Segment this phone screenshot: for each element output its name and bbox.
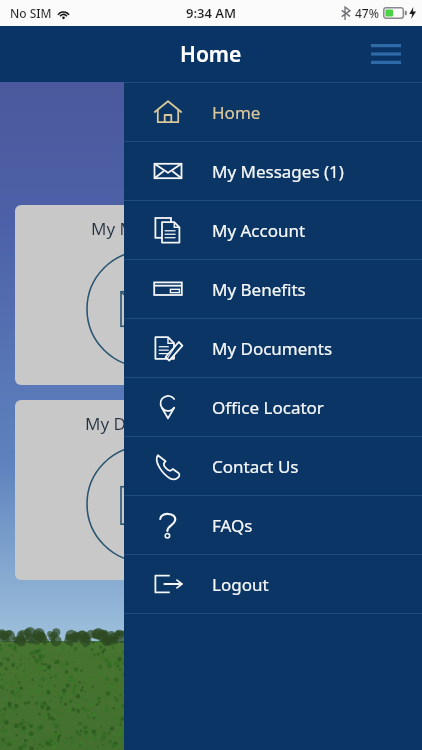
button[interactable]: My Messages [15,205,275,385]
button[interactable]: My Messages (1) [124,142,422,200]
staticText: 47% [355,5,379,21]
button[interactable]: FAQs [124,496,422,554]
button: Home [124,82,422,750]
staticText: FAQs [212,514,253,537]
staticText: Home [212,101,261,124]
staticText: My Documents [85,412,206,435]
staticText: My Documents [212,337,333,360]
staticText: Logout [212,573,269,596]
button[interactable]: My Account [124,201,422,259]
button[interactable]: Menu [362,30,410,78]
staticText: Home [180,40,242,69]
staticText: Contact Us [212,455,299,478]
button[interactable]: Logout [124,555,422,613]
button[interactable]: My Documents [124,319,422,377]
button[interactable]: My Benefits [124,260,422,318]
staticText: No SIM [10,5,52,21]
button[interactable]: Home [124,83,422,141]
staticText: My Messages [91,217,199,240]
staticText: My Account [212,219,306,242]
button[interactable]: My Documents [15,400,275,580]
staticText: Office Locator [212,396,324,419]
button[interactable]: Contact Us [124,437,422,495]
staticText: 9:34 AM [186,4,237,22]
staticText: My Benefits [212,278,306,301]
staticText: My Messages (1) [212,160,344,183]
button[interactable]: Office Locator [124,378,422,436]
